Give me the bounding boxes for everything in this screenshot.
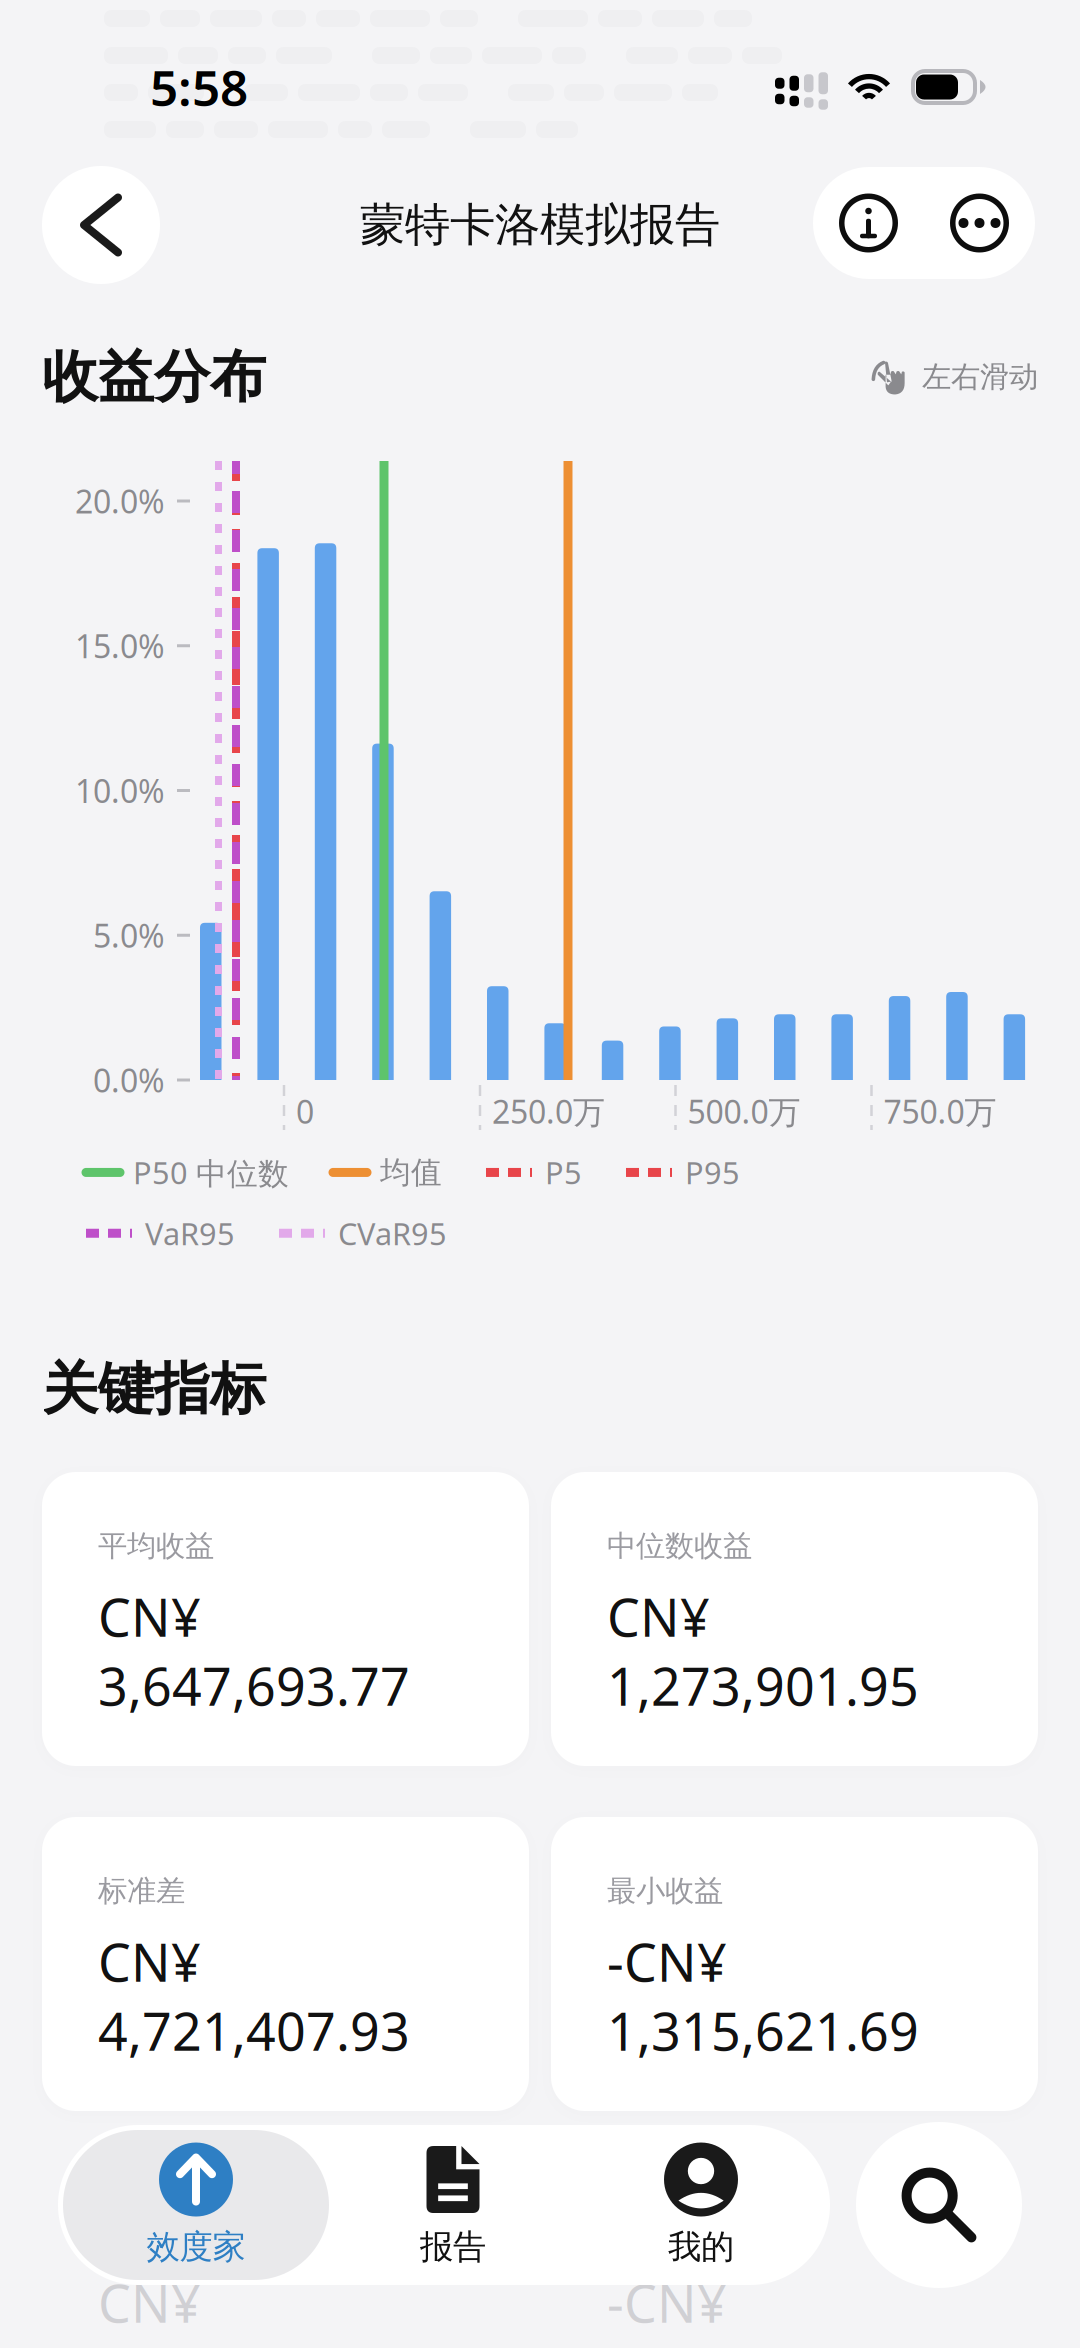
staticText: -CN¥ (607, 1927, 727, 1996)
button[interactable]: Search (856, 2122, 1022, 2288)
staticText: 3,647,693.77 (98, 1651, 410, 1720)
staticText: 750.0万 (883, 1090, 996, 1132)
staticText: 我的 (668, 2226, 734, 2267)
staticText: 1,315,621.69 (607, 1996, 919, 2065)
button[interactable]: 效度家 (63, 2130, 329, 2280)
staticText: 平均收益 (98, 1528, 214, 1564)
staticText: CN¥ (98, 1927, 201, 1996)
staticText: 标准差 (98, 1873, 185, 1909)
staticText: 5.0% (93, 914, 165, 956)
staticText: 500.0万 (687, 1090, 800, 1132)
button[interactable]: More options (924, 167, 1035, 279)
staticText: CN¥ (98, 2268, 201, 2337)
button[interactable]: Back (42, 166, 160, 284)
staticText: P95 (685, 1152, 740, 1193)
button[interactable]: 我的 (577, 2130, 825, 2280)
staticText: 蒙特卡洛模拟报告 (360, 197, 720, 253)
staticText: CN¥ (98, 1582, 201, 1651)
staticText: 均值 (380, 1154, 442, 1191)
staticText: 4,721,407.93 (98, 1996, 410, 2065)
staticText: 最小收益 (607, 1873, 723, 1909)
staticText: 关键指标 (42, 1355, 266, 1423)
staticText: 0.0% (93, 1059, 165, 1101)
button[interactable]: 报告 (329, 2130, 577, 2280)
staticText: P5 (545, 1152, 582, 1193)
staticText: 左右滑动 (922, 359, 1038, 395)
staticText: 收益分布 (42, 343, 266, 411)
staticText: P50 中位数 (133, 1152, 289, 1193)
staticText: 0 (296, 1090, 314, 1132)
staticText: 15.0% (75, 624, 165, 667)
staticText: 中位数收益 (607, 1528, 752, 1564)
staticText: 10.0% (75, 769, 165, 812)
button[interactable]: Information (813, 167, 924, 279)
staticText: 效度家 (146, 2226, 245, 2267)
staticText: 1,273,901.95 (607, 1651, 919, 1720)
staticText: -CN¥ (607, 2268, 727, 2337)
staticText: VaR95 (145, 1213, 235, 1254)
staticText: CVaR95 (338, 1213, 447, 1254)
staticText: 报告 (420, 2226, 486, 2267)
staticText: 250.0万 (492, 1090, 605, 1132)
staticText: CN¥ (607, 1582, 710, 1651)
staticText: 5:58 (150, 54, 248, 120)
staticText: 20.0% (75, 480, 165, 522)
